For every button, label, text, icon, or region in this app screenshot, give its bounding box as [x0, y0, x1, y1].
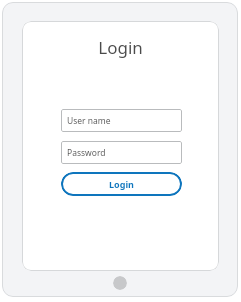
staticText: Login [109, 178, 134, 190]
staticText: Password [67, 147, 106, 159]
button[interactable]: Home [113, 276, 127, 290]
button[interactable]: Password [61, 141, 182, 164]
button[interactable]: Login [61, 172, 182, 196]
staticText: Login [22, 36, 219, 59]
button[interactable]: User name [61, 109, 182, 132]
staticText: User name [67, 115, 111, 127]
